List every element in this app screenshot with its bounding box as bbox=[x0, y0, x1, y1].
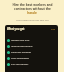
button[interactable]: Upfront fixed pricing bbox=[7, 43, 56, 49]
button[interactable]: Work guaranteed bbox=[7, 55, 56, 61]
staticText: Hire the best workers and bbox=[12, 3, 53, 7]
staticText: Upfront fixed pricing bbox=[11, 45, 33, 48]
staticText: contractors without the bbox=[14, 7, 51, 11]
button[interactable]: 24/7 live support bbox=[7, 61, 56, 67]
button[interactable]: Same-day bookings bbox=[7, 49, 56, 55]
staticText: hassle bbox=[27, 11, 37, 15]
staticText: Work guaranteed bbox=[11, 57, 29, 60]
staticText: Free bbox=[51, 28, 56, 31]
staticText: 24/7 live support bbox=[11, 63, 29, 66]
staticText: Verified local pros bbox=[11, 39, 30, 42]
staticText: Same-day bookings bbox=[11, 51, 32, 54]
staticText: Find trusted local pros near you bbox=[16, 19, 49, 22]
staticText: What you get bbox=[7, 27, 25, 31]
button[interactable]: Verified local pros bbox=[7, 37, 56, 43]
